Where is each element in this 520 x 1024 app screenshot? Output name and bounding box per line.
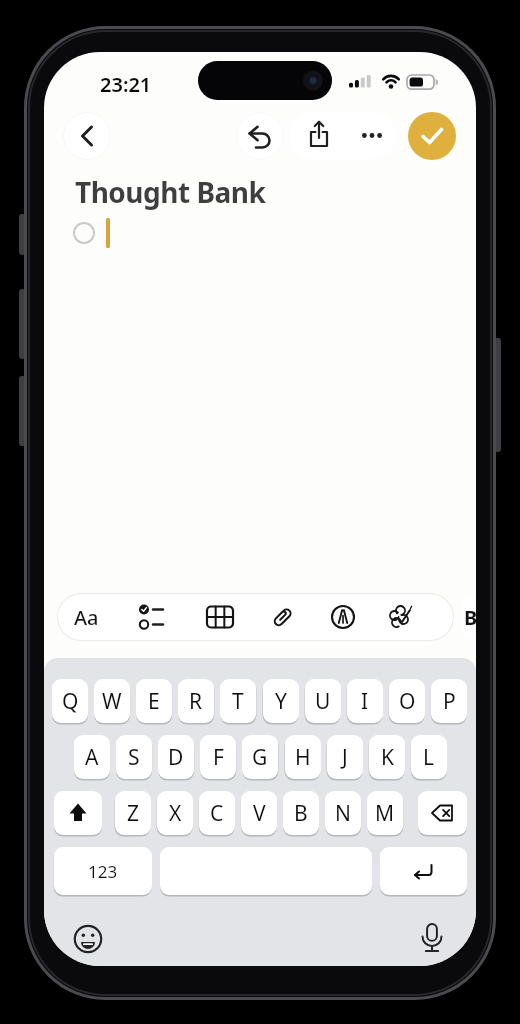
button[interactable] xyxy=(408,112,456,160)
staticText: Thought Bank xyxy=(75,173,266,211)
staticText: 23:21 xyxy=(100,71,152,98)
staticText: K xyxy=(381,743,394,772)
button[interactable]: Y xyxy=(263,679,299,723)
button[interactable]: V xyxy=(241,791,277,835)
button[interactable] xyxy=(343,112,396,159)
button[interactable] xyxy=(418,791,467,835)
staticText: Aa xyxy=(74,604,99,631)
button[interactable] xyxy=(236,112,284,160)
button[interactable] xyxy=(290,112,343,159)
button[interactable]: O xyxy=(389,679,425,723)
button[interactable]: R xyxy=(178,679,214,723)
staticText: E xyxy=(148,687,160,716)
staticText: H xyxy=(295,743,311,772)
staticText: W xyxy=(102,687,122,716)
button[interactable]: X xyxy=(157,791,193,835)
button[interactable]: M xyxy=(367,791,403,835)
button[interactable]: W xyxy=(94,679,130,723)
staticText: C xyxy=(210,799,224,828)
staticText: N xyxy=(335,799,351,828)
button[interactable]: E xyxy=(136,679,172,723)
button[interactable] xyxy=(71,922,105,956)
button[interactable]: 123 xyxy=(54,847,152,895)
button[interactable]: J xyxy=(327,735,363,779)
staticText: Z xyxy=(127,799,140,828)
button[interactable]: D xyxy=(158,735,194,779)
button[interactable]: S xyxy=(116,735,152,779)
button[interactable] xyxy=(380,847,467,895)
staticText: I xyxy=(361,687,369,716)
staticText: M xyxy=(375,799,395,828)
button[interactable]: H xyxy=(285,735,321,779)
staticText: U xyxy=(315,687,331,716)
button[interactable] xyxy=(380,597,420,637)
button[interactable]: F xyxy=(200,735,236,779)
button[interactable]: C xyxy=(199,791,235,835)
button[interactable]: U xyxy=(305,679,341,723)
button[interactable] xyxy=(132,597,172,637)
button[interactable]: Q xyxy=(52,679,88,723)
staticText: S xyxy=(128,743,140,772)
staticText: A xyxy=(85,743,99,772)
button[interactable]: K xyxy=(369,735,405,779)
button[interactable]: G xyxy=(242,735,278,779)
button[interactable]: Aa xyxy=(66,597,106,637)
staticText: 123 xyxy=(88,860,118,883)
button[interactable] xyxy=(54,791,102,835)
staticText: X xyxy=(169,799,182,828)
staticText: V xyxy=(253,799,266,828)
staticText: T xyxy=(232,687,244,716)
button[interactable]: L xyxy=(411,735,447,779)
staticText: Q xyxy=(62,687,79,716)
staticText: P xyxy=(443,687,456,716)
button[interactable]: B xyxy=(461,594,476,640)
button[interactable]: B xyxy=(283,791,319,835)
button[interactable] xyxy=(323,597,363,637)
button[interactable] xyxy=(263,597,303,637)
button[interactable]: T xyxy=(220,679,256,723)
button[interactable] xyxy=(200,597,240,637)
staticText: R xyxy=(189,687,203,716)
staticText: B xyxy=(464,604,476,631)
button[interactable]: N xyxy=(325,791,361,835)
button[interactable] xyxy=(63,112,111,160)
button[interactable] xyxy=(415,920,449,956)
staticText: F xyxy=(213,743,224,772)
staticText: G xyxy=(252,743,268,772)
staticText: L xyxy=(423,743,435,772)
staticText: Y xyxy=(275,687,287,716)
button[interactable]: A xyxy=(74,735,110,779)
button[interactable]: Z xyxy=(115,791,151,835)
staticText: B xyxy=(294,799,308,828)
staticText: J xyxy=(342,743,348,772)
button[interactable] xyxy=(160,847,372,895)
staticText: O xyxy=(399,687,416,716)
staticText: D xyxy=(168,743,184,772)
button[interactable]: I xyxy=(347,679,383,723)
button[interactable]: P xyxy=(431,679,467,723)
